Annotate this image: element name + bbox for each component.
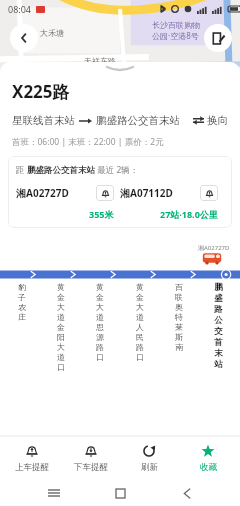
staticText: 末 xyxy=(214,348,223,359)
staticText: 路 xyxy=(96,342,104,352)
staticText: 收藏 xyxy=(200,462,217,473)
staticText: 口 xyxy=(57,362,65,372)
button[interactable]: Back xyxy=(10,24,38,52)
staticText: 鹏盛路公交首末站 xyxy=(27,165,95,176)
staticText: 首 xyxy=(214,337,223,348)
staticText: 道 xyxy=(57,352,65,362)
staticText: 刷新 xyxy=(141,462,158,473)
staticText: 湘A02727D xyxy=(198,244,230,252)
staticText: 金 xyxy=(57,292,65,302)
staticText: 道 xyxy=(136,312,144,322)
staticText: 百 xyxy=(175,282,183,292)
staticText: 奥 xyxy=(175,302,183,312)
staticText: 路 xyxy=(214,304,223,315)
button[interactable]: Remind 湘A02727D xyxy=(96,185,114,201)
button[interactable]: Report xyxy=(204,24,232,52)
staticText: 庄 xyxy=(18,312,26,322)
staticText: 人 xyxy=(136,322,144,332)
staticText: 公 xyxy=(214,315,223,326)
staticText: 民 xyxy=(136,332,144,342)
button[interactable]: 黄 xyxy=(122,282,158,362)
button[interactable]: 下车提醒 xyxy=(64,441,118,476)
staticText: 莱 xyxy=(175,322,183,332)
staticText: 盛 xyxy=(214,293,223,304)
button[interactable]: Home xyxy=(107,480,133,506)
button[interactable]: 百 xyxy=(161,282,197,352)
staticText: 星联线首末站 xyxy=(12,114,75,127)
button[interactable]: 收藏 xyxy=(181,441,235,476)
staticText: 源 xyxy=(96,332,104,342)
staticText: 距 xyxy=(16,164,27,176)
staticText: 站 xyxy=(214,359,223,370)
staticText: 口 xyxy=(96,352,104,362)
staticText: 阳 xyxy=(57,332,65,342)
button[interactable]: 黄 xyxy=(82,282,118,362)
staticText: 金 xyxy=(57,322,65,332)
staticText: 换向 xyxy=(207,114,228,127)
button[interactable]: 鹏 xyxy=(200,282,236,370)
button[interactable]: 豹 xyxy=(4,282,40,322)
staticText: 农 xyxy=(18,302,26,312)
staticText: 最近 2辆： xyxy=(95,164,139,176)
staticText: 大 xyxy=(96,302,104,312)
staticText: 大 xyxy=(57,342,65,352)
staticText: 联 xyxy=(175,292,183,302)
staticText: 道 xyxy=(96,312,104,322)
staticText: 湘A02727D xyxy=(16,186,69,200)
staticText: 斯 xyxy=(175,332,183,342)
staticText: 355米 xyxy=(89,208,114,220)
staticText: X225路 xyxy=(12,80,70,103)
staticText: 鹏盛路公交首末站 xyxy=(96,114,180,127)
staticText: 交 xyxy=(214,326,223,337)
staticText: 口 xyxy=(136,352,144,362)
button[interactable]: 距 xyxy=(8,156,232,228)
staticText: 公园·空港8号 xyxy=(152,30,199,41)
button[interactable]: Remind 湘A07112D xyxy=(200,185,218,201)
staticText: 长沙百联购物 xyxy=(152,20,200,30)
staticText: 金 xyxy=(136,292,144,302)
staticText: 下车提醒 xyxy=(74,462,108,473)
staticText: 道 xyxy=(57,312,65,322)
button[interactable]: 换向 xyxy=(191,112,230,129)
staticText: 首班：06:00 | 末班：22:00 | 票价：2元 xyxy=(12,136,164,148)
staticText: 黄 xyxy=(96,282,104,292)
staticText: 27站·18.0公里 xyxy=(160,208,218,220)
button[interactable]: Recents xyxy=(41,480,67,506)
staticText: 天祥东路 xyxy=(84,56,116,66)
staticText: 子 xyxy=(18,292,26,302)
staticText: 鹏 xyxy=(214,282,223,293)
staticText: 金 xyxy=(96,292,104,302)
staticText: 湘A07112D xyxy=(120,186,173,200)
button[interactable]: 上车提醒 xyxy=(5,441,59,476)
staticText: 大 xyxy=(136,302,144,312)
staticText: 豹 xyxy=(18,282,26,292)
staticText: 特 xyxy=(175,312,183,322)
staticText: 思 xyxy=(96,322,104,332)
staticText: 大禾塘 xyxy=(40,28,64,38)
button[interactable]: Back xyxy=(174,480,200,506)
staticText: 大 xyxy=(57,302,65,312)
button[interactable]: 刷新 xyxy=(122,441,176,476)
staticText: 黄 xyxy=(136,282,144,292)
staticText: 路 xyxy=(136,342,144,352)
staticText: 08:04 xyxy=(8,3,32,15)
staticText: 黄 xyxy=(57,282,65,292)
staticText: 上车提醒 xyxy=(15,462,49,473)
button[interactable]: 黄 xyxy=(43,282,79,372)
staticText: 南 xyxy=(175,342,183,352)
